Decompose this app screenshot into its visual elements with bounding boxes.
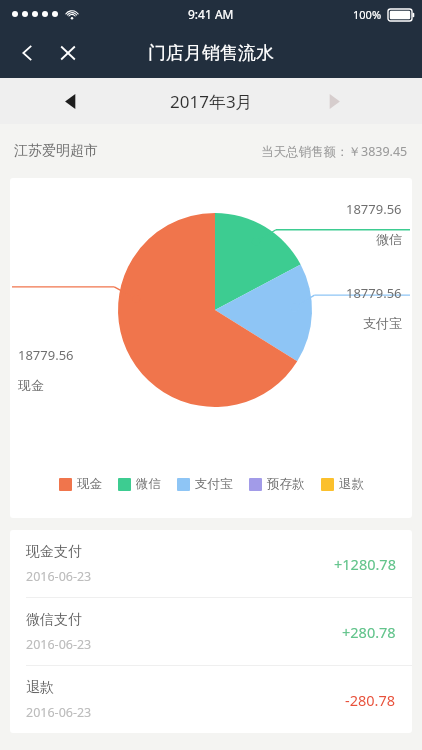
staticText: 现金 [18, 377, 44, 393]
button[interactable]: Previous month [52, 83, 88, 119]
staticText: 现金支付 [26, 543, 82, 561]
staticText: +280.78 [342, 622, 396, 642]
staticText: 门店月销售流水 [148, 42, 274, 65]
button[interactable]: 支付宝 [177, 476, 233, 492]
staticText: 18779.56 [346, 200, 402, 218]
staticText: 江苏爱明超市 [14, 142, 98, 160]
staticText: 18779.56 [18, 346, 74, 364]
staticText: -280.78 [345, 690, 396, 710]
button[interactable]: 预存款 [249, 476, 305, 492]
button[interactable]: 退款 [10, 666, 412, 733]
staticText: 2016-06-23 [26, 568, 92, 585]
staticText: 18779.56 [346, 284, 402, 302]
button[interactable]: 现金支付 [10, 530, 412, 598]
button[interactable]: 微信支付 [10, 598, 412, 666]
staticText: 2016-06-23 [26, 636, 92, 653]
staticText: 预存款 [267, 476, 305, 492]
staticText: +1280.78 [334, 554, 396, 574]
staticText: 现金 [77, 476, 102, 492]
staticText: 2016-06-23 [26, 704, 92, 721]
staticText: 当天总销售额：￥3839.45 [261, 143, 408, 160]
button[interactable]: Back [8, 33, 48, 73]
staticText: 退款 [339, 476, 364, 492]
staticText: 9:41 AM [188, 6, 234, 22]
staticText: 微信 [136, 476, 161, 492]
staticText: 支付宝 [363, 315, 402, 331]
staticText: 支付宝 [195, 476, 233, 492]
button[interactable]: 微信 [118, 476, 161, 492]
staticText: 微信支付 [26, 611, 82, 629]
button[interactable]: 退款 [321, 476, 364, 492]
staticText: 微信 [376, 231, 402, 247]
staticText: 2017年3月 [170, 90, 253, 113]
button[interactable]: 现金 [59, 476, 102, 492]
button[interactable]: Next month [316, 83, 352, 119]
button[interactable]: Close [48, 33, 88, 73]
staticText: 100% [353, 7, 382, 22]
staticText: 退款 [26, 679, 54, 697]
